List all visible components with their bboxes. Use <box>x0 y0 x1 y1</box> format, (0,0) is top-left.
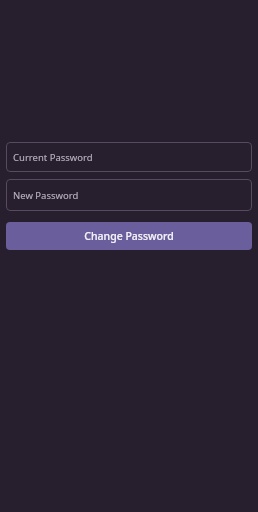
button[interactable]: Current Password <box>6 142 252 172</box>
staticText: New Password <box>13 189 79 202</box>
button[interactable]: Change Password <box>6 222 252 250</box>
button[interactable]: New Password <box>6 179 252 211</box>
staticText: Change Password <box>84 229 174 243</box>
staticText: Current Password <box>13 151 93 164</box>
